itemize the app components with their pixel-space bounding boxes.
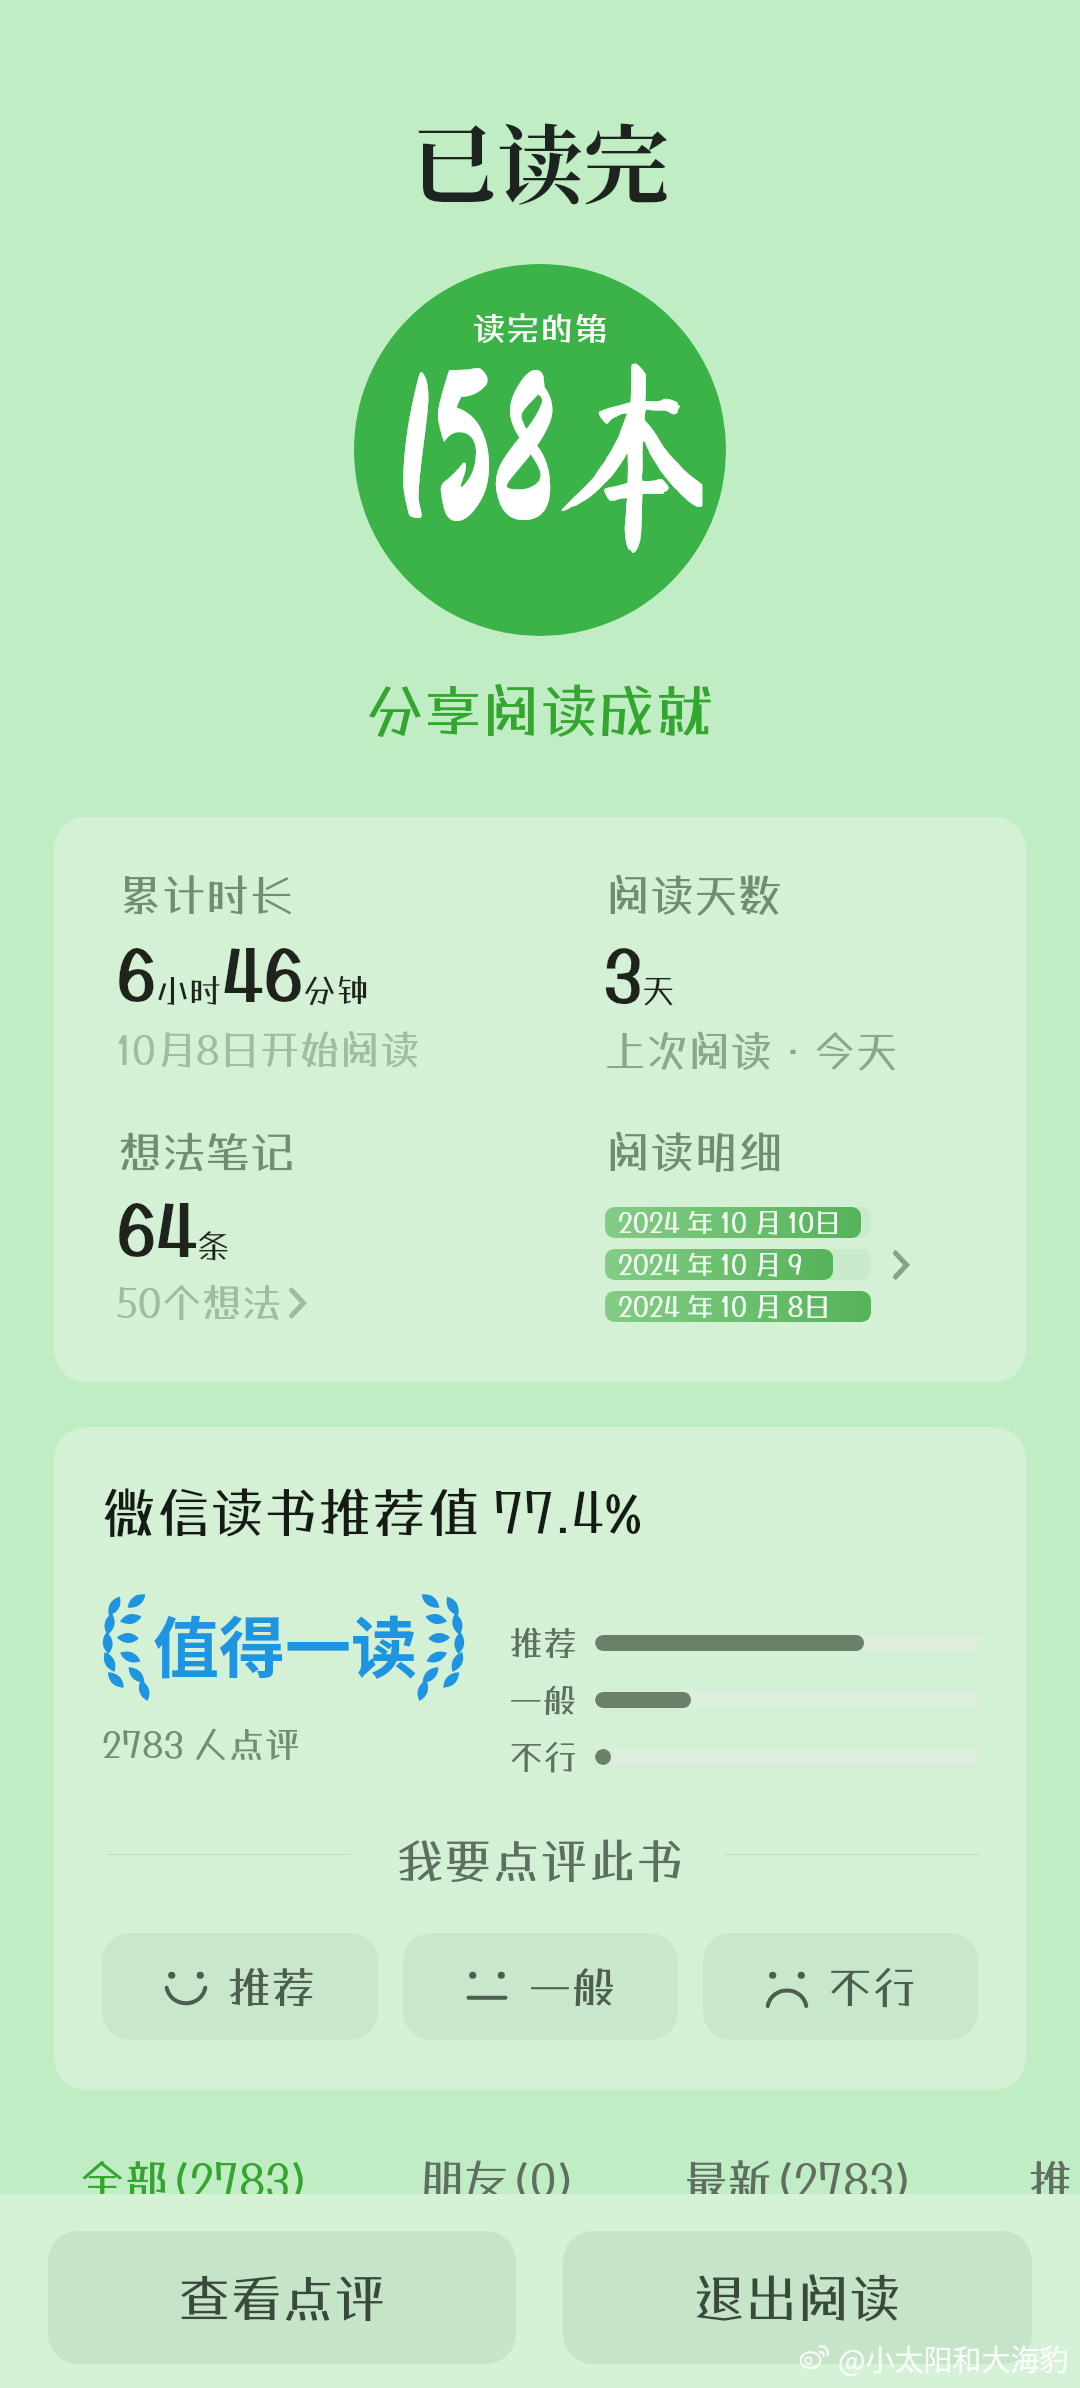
- staticText: 推荐: [509, 1623, 577, 1663]
- button[interactable]: 退出阅读: [563, 2231, 1032, 2364]
- staticText: 2024 年 10 月 8日: [618, 1291, 831, 1321]
- staticText: 推荐: [227, 1961, 315, 2013]
- staticText: 条: [197, 1226, 230, 1265]
- staticText: 64: [116, 1189, 197, 1269]
- staticText: 2024 年 10 月 10日: [618, 1207, 842, 1237]
- button[interactable]: 朋友(0): [420, 2154, 579, 2206]
- staticText: 一般: [528, 1961, 616, 2013]
- staticText: 小时: [156, 971, 222, 1010]
- staticText: 最新(2783): [684, 2154, 916, 2206]
- staticText: 3: [604, 934, 642, 1014]
- staticText: @小太阳和大海豹: [838, 2337, 1069, 2379]
- staticText: 158本: [395, 350, 702, 556]
- staticText: 50个想法: [116, 1279, 282, 1326]
- staticText: 天: [642, 971, 675, 1010]
- button[interactable]: 推: [1028, 2154, 1072, 2206]
- staticText: 退出阅读: [693, 2267, 902, 2328]
- staticText: 46: [222, 934, 303, 1014]
- staticText: 2783 人点评: [102, 1723, 301, 1765]
- staticText: 全部(2783): [80, 2154, 312, 2206]
- staticText: 分享阅读成就: [366, 676, 715, 744]
- button[interactable]: 分享阅读成就: [354, 670, 727, 750]
- button[interactable]: 我要点评此书: [378, 1826, 703, 1895]
- staticText: 读完的第: [472, 309, 608, 348]
- button[interactable]: 查看点评: [48, 2231, 516, 2364]
- button[interactable]: 最新(2783): [684, 2154, 916, 2206]
- button[interactable]: 2024 年 10 月 10日: [605, 1207, 909, 1322]
- staticText: 上次阅读 · 今天: [604, 1026, 898, 1076]
- button[interactable]: 不行: [703, 1933, 978, 2040]
- button[interactable]: 50个想法: [116, 1279, 306, 1326]
- staticText: 朋友(0): [420, 2154, 579, 2206]
- staticText: 微信读书推荐值 77.4%: [102, 1480, 643, 1544]
- staticText: 不行: [509, 1737, 577, 1777]
- staticText: 已读完: [411, 98, 669, 222]
- staticText: 6: [116, 934, 156, 1014]
- staticText: 查看点评: [178, 2267, 387, 2328]
- staticText: 值得一读: [153, 1595, 417, 1691]
- staticText: 我要点评此书: [396, 1832, 685, 1889]
- staticText: 推: [1028, 2154, 1072, 2206]
- staticText: 分钟: [303, 971, 369, 1010]
- button[interactable]: 一般: [403, 1933, 678, 2040]
- staticText: 一般: [509, 1680, 577, 1720]
- staticText: 2024 年 10 月 9: [618, 1249, 803, 1279]
- staticText: 10月8日开始阅读: [116, 1026, 420, 1073]
- staticText: 阅读明细: [606, 1126, 782, 1178]
- staticText: 不行: [828, 1961, 916, 2013]
- staticText: 想法笔记: [118, 1126, 294, 1178]
- staticText: 阅读天数: [606, 869, 782, 921]
- staticText: 累计时长: [118, 869, 294, 921]
- button[interactable]: 全部(2783): [80, 2154, 312, 2206]
- button[interactable]: 推荐: [102, 1933, 378, 2040]
